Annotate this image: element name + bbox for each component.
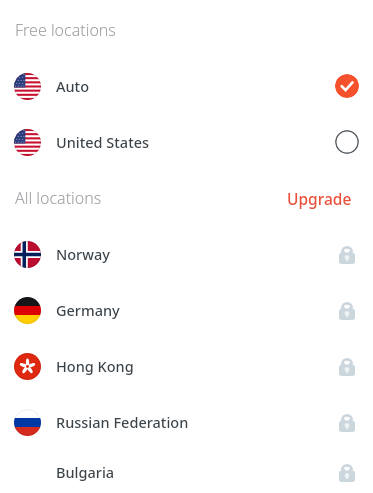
button[interactable]: Not selected: [335, 130, 359, 154]
button[interactable]: Locked, upgrade required: [335, 410, 359, 434]
button[interactable]: Upgrade: [285, 184, 354, 213]
button[interactable]: Germany: [0, 282, 373, 338]
button[interactable]: Norway: [0, 226, 373, 282]
button[interactable]: Locked, upgrade required: [335, 460, 359, 484]
staticText: Germany: [56, 300, 120, 320]
button[interactable]: Auto: [0, 58, 373, 114]
button[interactable]: United States: [0, 114, 373, 170]
button[interactable]: Russian Federation: [0, 394, 373, 450]
button[interactable]: Hong Kong: [0, 338, 373, 394]
staticText: All locations: [15, 187, 102, 209]
button[interactable]: Selected: [335, 74, 359, 98]
button[interactable]: Bulgaria: [0, 450, 373, 493]
staticText: Hong Kong: [56, 356, 134, 376]
staticText: Auto: [56, 76, 90, 96]
staticText: United States: [56, 132, 150, 152]
button[interactable]: Locked, upgrade required: [335, 298, 359, 322]
staticText: Norway: [56, 244, 110, 264]
staticText: Free locations: [15, 19, 116, 41]
button[interactable]: Locked, upgrade required: [335, 242, 359, 266]
staticText: Bulgaria: [56, 462, 115, 482]
staticText: Russian Federation: [56, 412, 189, 432]
staticText: Upgrade: [287, 188, 352, 209]
button[interactable]: Locked, upgrade required: [335, 354, 359, 378]
